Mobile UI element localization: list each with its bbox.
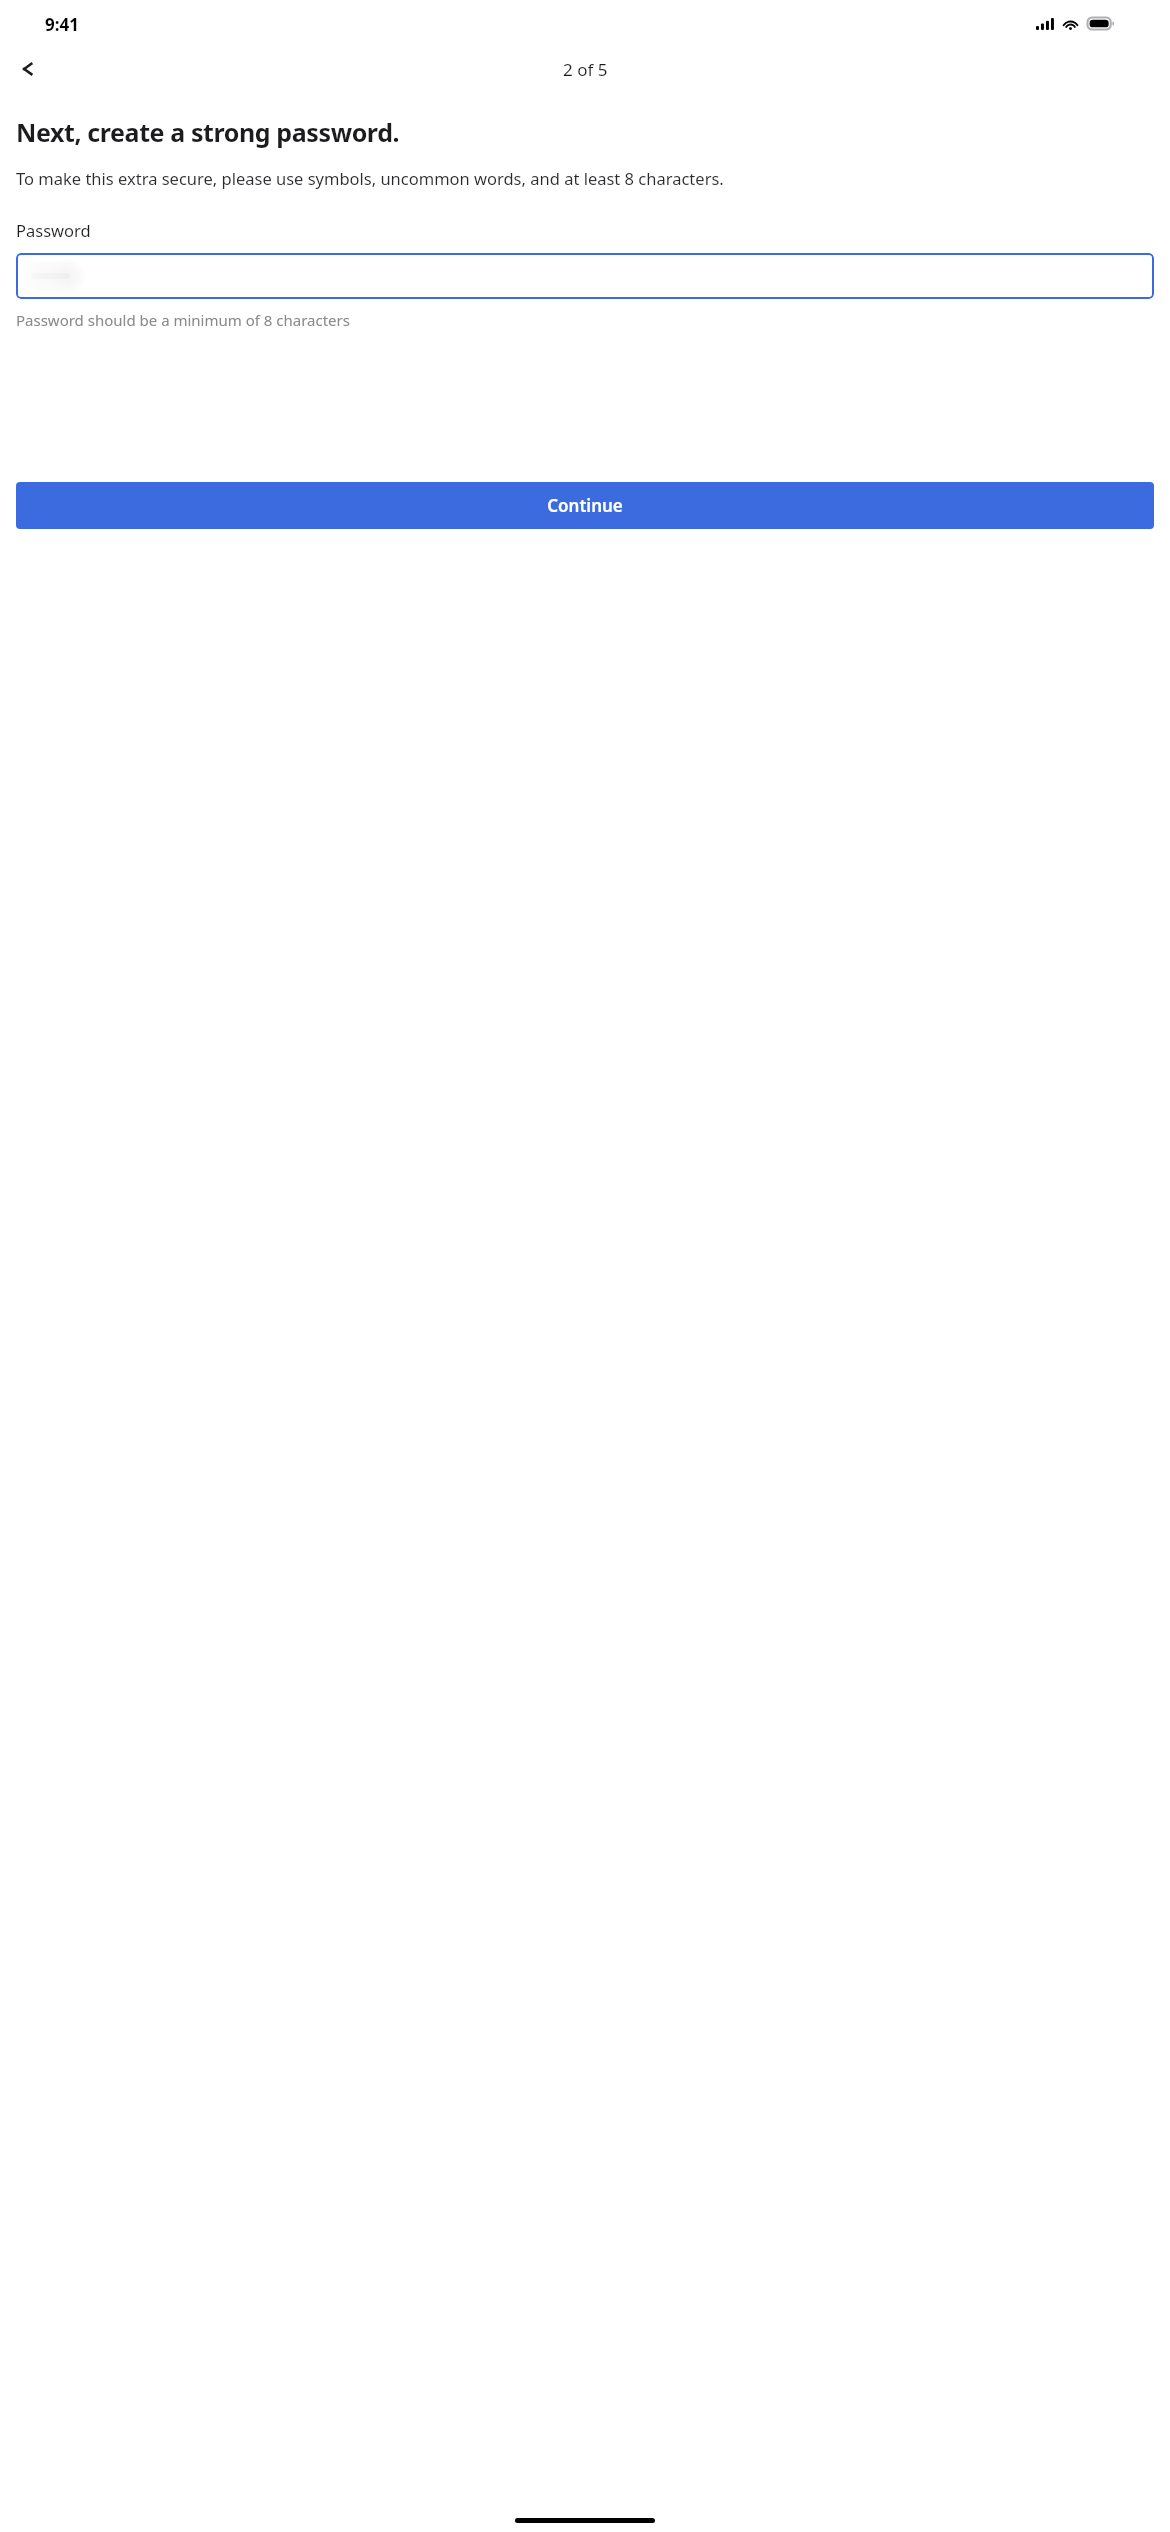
staticText: 9:41 xyxy=(45,13,79,36)
button[interactable]: Password field xyxy=(16,253,1154,299)
staticText: To make this extra secure, please use sy… xyxy=(16,167,1152,189)
staticText: Next, create a strong password. xyxy=(16,115,1160,149)
button[interactable]: Back xyxy=(6,47,50,91)
button[interactable]: Continue xyxy=(16,482,1154,529)
staticText: 2 of 5 xyxy=(563,58,608,81)
staticText: Continue xyxy=(547,494,623,517)
staticText: Password should be a minimum of 8 charac… xyxy=(16,310,1154,330)
staticText: Password xyxy=(16,219,1170,241)
